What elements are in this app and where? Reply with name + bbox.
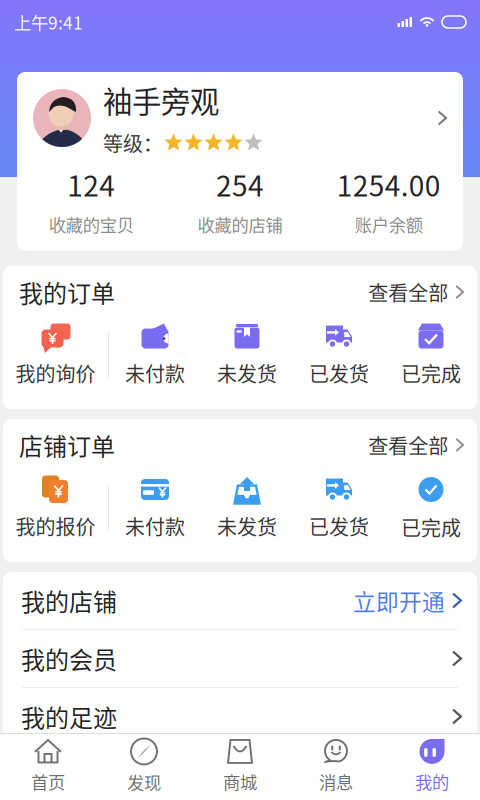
button[interactable]: 未发货 bbox=[201, 322, 293, 387]
staticText: 254 bbox=[216, 164, 264, 204]
button[interactable]: 我的 bbox=[384, 733, 480, 800]
button[interactable]: 我的订单 bbox=[3, 266, 477, 318]
button[interactable]: 已发货 bbox=[293, 322, 385, 387]
staticText: 袖手旁观 bbox=[103, 79, 219, 121]
button[interactable]: 我的店铺 bbox=[3, 572, 477, 629]
staticText: 上午9:41 bbox=[14, 9, 83, 35]
button[interactable]: 已完成 bbox=[385, 322, 477, 387]
button[interactable]: 未付款 bbox=[109, 322, 201, 387]
button[interactable]: 124 bbox=[17, 164, 166, 237]
button[interactable]: 商城 bbox=[192, 733, 288, 800]
staticText: 我的店铺 bbox=[21, 583, 117, 618]
staticText: 商城 bbox=[223, 769, 257, 794]
staticText: 未发货 bbox=[217, 358, 277, 387]
staticText: 消息 bbox=[319, 769, 353, 794]
button[interactable]: 已发货 bbox=[293, 475, 385, 540]
staticText: 未付款 bbox=[125, 358, 185, 387]
staticText: 我的 bbox=[415, 769, 449, 794]
staticText: 1254.00 bbox=[337, 164, 441, 204]
staticText: 已完成 bbox=[401, 512, 461, 541]
button[interactable]: 消息 bbox=[288, 733, 384, 800]
staticText: 发现 bbox=[127, 769, 161, 795]
staticText: 未发货 bbox=[217, 511, 277, 540]
button[interactable]: 未发货 bbox=[201, 475, 293, 540]
button[interactable]: 发现 bbox=[96, 733, 192, 800]
button[interactable]: 已完成 bbox=[385, 474, 477, 541]
staticText: 立即开通 bbox=[353, 584, 445, 617]
button[interactable]: 1254.00 bbox=[314, 164, 463, 237]
staticText: 等级： bbox=[103, 128, 163, 157]
button[interactable]: 我的询价 bbox=[3, 322, 108, 387]
button[interactable]: 我的报价 bbox=[3, 475, 108, 540]
staticText: 店铺订单 bbox=[19, 428, 115, 462]
staticText: 已发货 bbox=[309, 511, 369, 540]
button[interactable]: 首页 bbox=[0, 733, 96, 800]
staticText: 收藏的店铺 bbox=[197, 211, 282, 237]
staticText: 我的询价 bbox=[15, 358, 95, 387]
button[interactable]: 我的足迹 bbox=[3, 688, 477, 745]
staticText: 我的会员 bbox=[21, 641, 117, 676]
staticText: 收藏的宝贝 bbox=[49, 211, 134, 237]
button[interactable]: 我的会员 bbox=[3, 630, 477, 687]
button[interactable]: 店铺订单 bbox=[3, 419, 477, 471]
button[interactable]: 袖手旁观 bbox=[17, 72, 463, 164]
button[interactable]: 未付款 bbox=[109, 475, 201, 540]
staticText: 查看全部 bbox=[368, 430, 448, 459]
staticText: 我的报价 bbox=[15, 511, 95, 540]
button[interactable]: 254 bbox=[166, 164, 314, 237]
staticText: 我的足迹 bbox=[21, 699, 117, 734]
staticText: 未付款 bbox=[125, 511, 185, 540]
staticText: 已完成 bbox=[401, 358, 461, 387]
staticText: 我的订单 bbox=[19, 275, 115, 309]
staticText: 已发货 bbox=[309, 358, 369, 387]
staticText: 账户余额 bbox=[355, 211, 423, 237]
staticText: 124 bbox=[67, 164, 115, 204]
staticText: 首页 bbox=[31, 769, 65, 794]
staticText: 查看全部 bbox=[368, 277, 448, 306]
